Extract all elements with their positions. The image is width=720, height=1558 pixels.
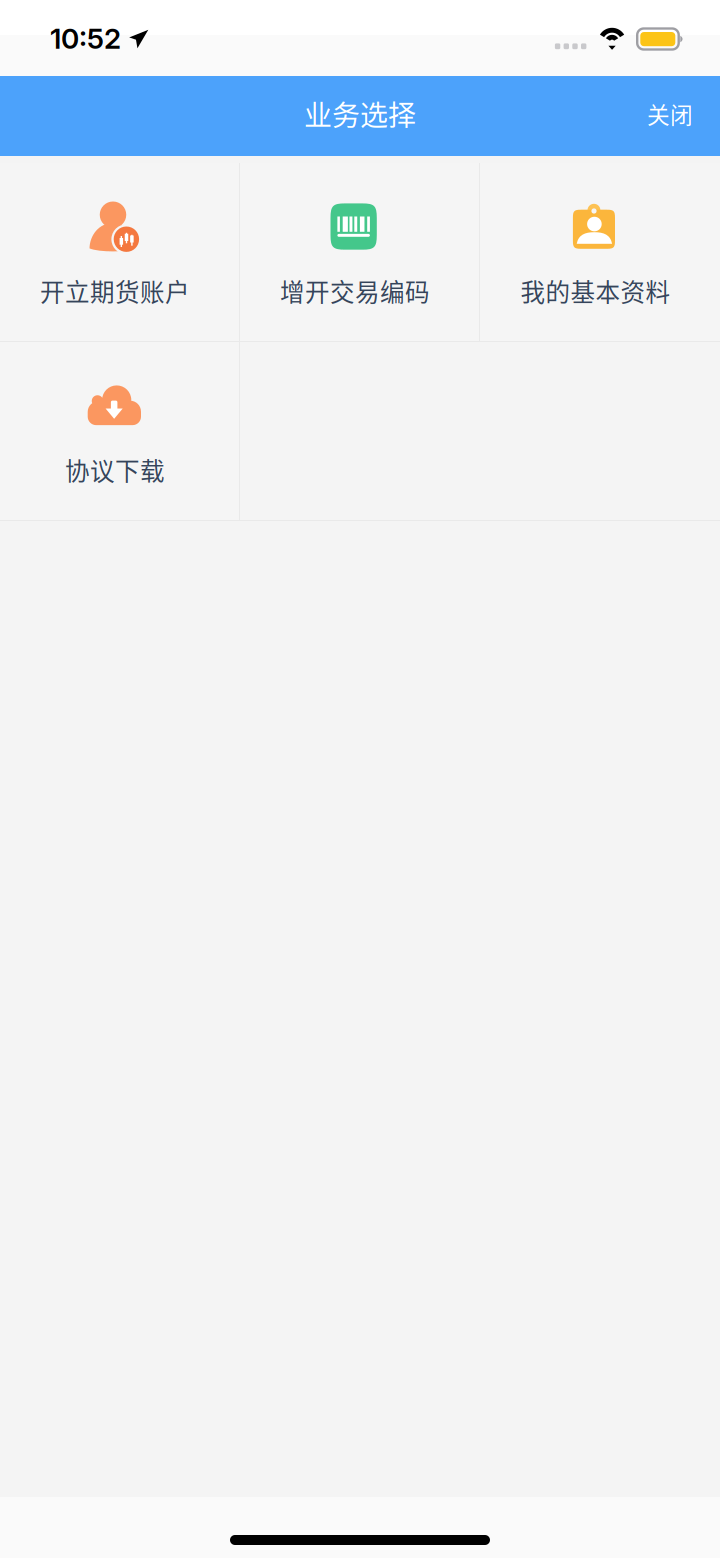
button[interactable]: 我的基本资料 xyxy=(480,163,720,341)
staticText: 业务选择 xyxy=(304,93,416,134)
button[interactable]: 关闭 xyxy=(620,76,720,156)
button[interactable]: 协议下载 xyxy=(0,342,239,520)
button[interactable]: 增开交易编码 xyxy=(240,163,479,341)
staticText: 10:52 xyxy=(50,22,121,55)
staticText: 关闭 xyxy=(647,97,693,130)
button[interactable]: 开立期货账户 xyxy=(0,163,239,341)
staticText: 我的基本资料 xyxy=(520,273,670,308)
staticText: 开立期货账户 xyxy=(40,273,190,308)
staticText: 协议下载 xyxy=(65,452,165,487)
staticText: 增开交易编码 xyxy=(280,273,430,308)
